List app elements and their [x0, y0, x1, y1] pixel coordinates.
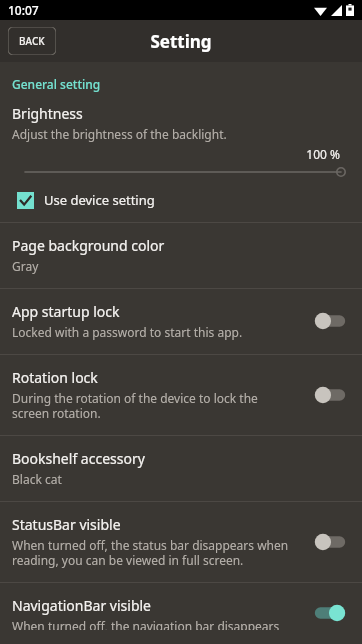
button[interactable] — [12, 164, 350, 180]
staticText: Rotation lock — [12, 368, 98, 387]
staticText: General setting — [12, 76, 101, 92]
button[interactable]: BACK — [8, 27, 56, 55]
staticText: Setting — [150, 30, 212, 53]
button[interactable]: Toggle off — [310, 384, 350, 406]
staticText: Locked with a password to start this app… — [12, 324, 243, 340]
button[interactable]: StatusBar visible — [0, 502, 362, 582]
staticText: Bookshelf accessory — [12, 449, 145, 468]
staticText: Gray — [12, 258, 39, 274]
button[interactable]: Toggle on — [310, 602, 350, 624]
button[interactable]: Bookshelf accessory — [0, 436, 362, 501]
staticText: When turned off, the status bar disappea… — [12, 537, 298, 568]
button[interactable]: App startup lock — [0, 289, 362, 354]
staticText: Use device setting — [44, 191, 155, 209]
staticText: StatusBar visible — [12, 515, 121, 534]
staticText: BACK — [19, 34, 45, 48]
button[interactable]: NavigationBar visible — [0, 583, 362, 644]
staticText: Black cat — [12, 471, 62, 487]
staticText: 10:07 — [8, 2, 39, 18]
button[interactable]: Page background color — [0, 223, 362, 288]
staticText: Brightness — [12, 104, 83, 123]
staticText: App startup lock — [12, 302, 120, 321]
staticText: NavigationBar visible — [12, 596, 152, 615]
staticText: Page background color — [12, 236, 165, 255]
staticText: Adjust the brightness of the backlight. — [12, 126, 227, 142]
staticText: During the rotation of the device to loc… — [12, 390, 298, 421]
staticText: When turned off, the navigation bar disa… — [12, 618, 298, 630]
button[interactable]: Rotation lock — [0, 355, 362, 435]
button[interactable]: Toggle off — [310, 310, 350, 332]
button[interactable]: Use device setting — [12, 186, 350, 214]
staticText: 100 % — [12, 146, 340, 162]
button[interactable]: Toggle off — [310, 531, 350, 553]
